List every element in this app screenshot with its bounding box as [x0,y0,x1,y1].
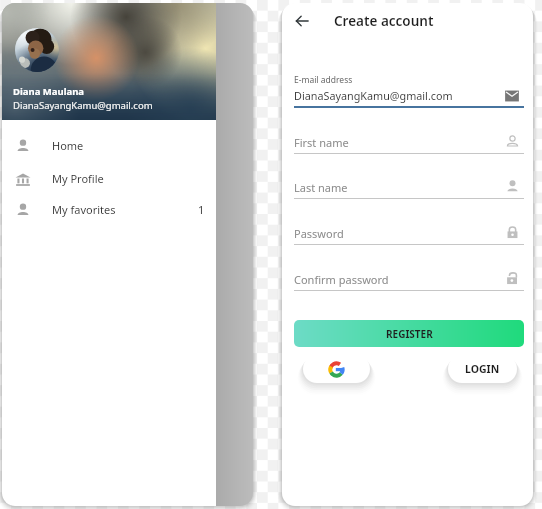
staticText: DianaSayangKamu@gmail.com [294,88,453,103]
staticText: First name [294,135,349,150]
button[interactable]: Home [2,130,216,161]
staticText: REGISTER [386,327,433,341]
staticText: Password [294,226,344,241]
button[interactable]: LOGIN [448,355,517,383]
button[interactable]: Back [288,7,316,35]
staticText: E-mail address [294,74,353,86]
staticText: Confirm password [294,272,389,287]
staticText: My favorites [52,202,116,217]
staticText: Home [52,138,84,153]
staticText: DianaSayangKamu@gmail.com [13,99,153,112]
button[interactable]: My favorites [2,194,216,225]
staticText: Create account [334,12,434,30]
staticText: Diana Maulana [13,85,85,98]
button[interactable]: My Profile [2,163,216,194]
staticText: My Profile [52,171,104,186]
button[interactable]: REGISTER [294,320,524,347]
staticText: 1 [198,202,205,217]
staticText: LOGIN [465,362,500,376]
button[interactable]: Sign in with Google [303,355,370,383]
staticText: Last name [294,180,348,195]
